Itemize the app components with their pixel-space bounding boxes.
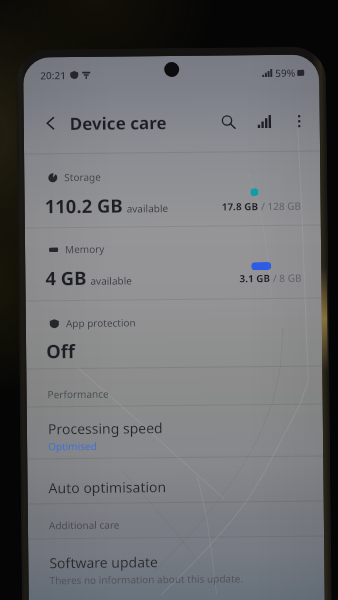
staticText: Storage [64,170,101,184]
staticText: available [127,201,169,215]
staticText: / 128 GB [259,199,302,213]
button[interactable]: Navigate up [38,110,64,136]
staticText: Auto optimisation [48,477,167,497]
staticText: 4 GB [45,265,87,290]
staticText: Performance [47,387,110,401]
staticText: Memory [65,242,105,256]
staticText: 17.8 GB [222,199,259,213]
staticText: Software update [49,552,158,572]
staticText: App protection [66,315,136,330]
staticText: Off [46,338,75,363]
staticText: Optimised [48,439,97,453]
staticText: available [90,273,132,288]
staticText: Device care [70,111,167,135]
button[interactable]: Usage statistics [251,108,277,134]
staticText: 20:21 [40,68,66,82]
staticText: 3.1 GB [239,271,270,285]
staticText: Additional care [49,518,120,532]
button[interactable]: More options [286,107,312,134]
staticText: Theres no information about this update. [49,571,244,587]
staticText: Processing speed [48,418,163,438]
staticText: 110.2 GB [44,192,124,218]
button[interactable]: Search [215,108,241,135]
button[interactable]: Processing speed [27,414,323,457]
button[interactable]: Auto optimisation [27,473,324,501]
staticText: 59% [275,66,295,80]
staticText: / 8 GB [270,271,302,285]
button[interactable]: Software update [28,548,325,591]
